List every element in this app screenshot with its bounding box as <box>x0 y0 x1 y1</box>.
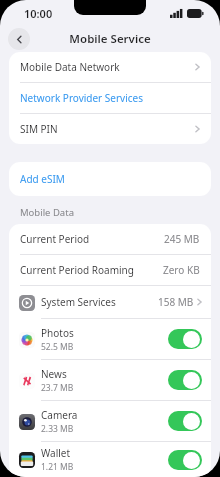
staticText: System Services <box>41 295 116 309</box>
button[interactable]: Toggle mobile data <box>168 370 202 390</box>
staticText: Mobile Data <box>20 206 74 219</box>
staticText: 1.21 MB <box>41 461 74 473</box>
staticText: 2.33 MB <box>41 423 74 435</box>
staticText: Add eSIM <box>20 172 65 186</box>
button[interactable]: SIM PIN <box>9 114 211 144</box>
staticText: Mobile Data Network <box>20 60 120 74</box>
button[interactable]: Current Period <box>9 224 211 254</box>
button[interactable]: Back <box>8 28 30 50</box>
staticText: 23.7 MB <box>41 382 74 394</box>
button[interactable]: Add eSIM <box>9 162 211 196</box>
button[interactable]: Camera <box>9 401 211 441</box>
staticText: Zero KB <box>163 263 200 277</box>
staticText: 158 MB <box>158 295 194 309</box>
staticText: Network Provider Services <box>20 91 143 105</box>
staticText: SIM PIN <box>20 122 58 136</box>
staticText: Mobile Service <box>69 31 151 47</box>
staticText: Photos <box>41 326 74 340</box>
button[interactable]: Network Provider Services <box>9 83 211 113</box>
button[interactable]: Current Period Roaming <box>9 255 211 285</box>
staticText: 10:00 <box>24 6 53 21</box>
button[interactable]: News <box>9 360 211 400</box>
button[interactable]: System Services <box>9 286 211 318</box>
button[interactable]: Photos <box>9 319 211 359</box>
button[interactable]: Toggle mobile data <box>168 411 202 431</box>
staticText: Current Period <box>20 232 90 246</box>
button[interactable]: Mobile Data Network <box>9 52 211 82</box>
staticText: News <box>41 367 67 381</box>
button[interactable]: Wallet <box>9 442 211 477</box>
staticText: Camera <box>41 408 78 422</box>
staticText: Current Period Roaming <box>20 263 134 277</box>
staticText: 245 MB <box>164 232 200 246</box>
button[interactable]: Toggle mobile data <box>168 329 202 349</box>
staticText: Wallet <box>41 446 71 460</box>
button[interactable]: Toggle mobile data <box>168 450 202 470</box>
staticText: 52.5 MB <box>41 341 74 353</box>
